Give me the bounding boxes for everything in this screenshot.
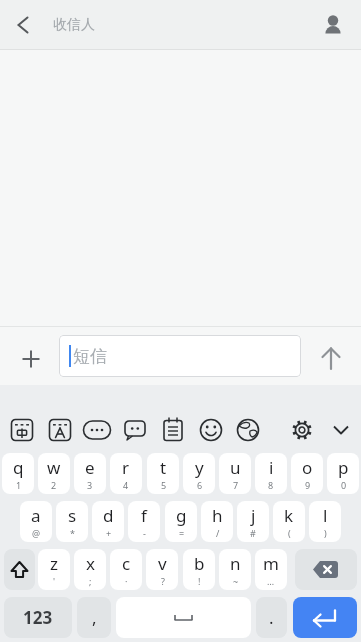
staticText: , (92, 606, 97, 629)
staticText: z (50, 552, 58, 575)
staticText: 9 (305, 479, 311, 491)
staticText: 1 (16, 479, 22, 491)
staticText: w (47, 456, 61, 479)
button[interactable]: r (110, 453, 142, 494)
staticText: = (179, 527, 185, 539)
staticText: 7 (233, 479, 239, 491)
staticText: b (194, 552, 205, 575)
button[interactable] (41, 406, 79, 454)
button[interactable] (293, 597, 357, 638)
staticText: p (338, 456, 349, 479)
button[interactable] (309, 0, 361, 50)
button[interactable] (192, 406, 230, 454)
button[interactable] (4, 549, 35, 590)
staticText: @ (32, 527, 41, 539)
button[interactable]: b (183, 549, 215, 590)
staticText: ! (198, 575, 201, 587)
staticText: 2 (51, 479, 57, 491)
button[interactable]: u (219, 453, 251, 494)
staticText: + (106, 527, 112, 539)
staticText: · (125, 575, 128, 587)
button[interactable] (229, 406, 267, 454)
button[interactable]: a (20, 501, 52, 542)
button[interactable]: l (309, 501, 341, 542)
button[interactable]: j (237, 501, 269, 542)
staticText: e (85, 456, 95, 479)
button[interactable]: m (255, 549, 287, 590)
button[interactable] (154, 406, 192, 454)
staticText: r (122, 456, 130, 479)
button[interactable]: z (38, 549, 70, 590)
staticText: s (68, 504, 77, 527)
button[interactable]: h (201, 501, 233, 542)
staticText: - (143, 527, 146, 539)
staticText: q (13, 456, 24, 479)
button[interactable]: v (146, 549, 178, 590)
staticText: . (269, 606, 274, 629)
staticText: y (195, 456, 204, 479)
button[interactable] (283, 406, 321, 454)
button[interactable] (322, 406, 360, 454)
button[interactable]: o (291, 453, 323, 494)
staticText: / (216, 527, 220, 539)
staticText: ) (324, 527, 327, 539)
staticText: ? (161, 575, 165, 587)
staticText: c (122, 552, 131, 575)
staticText: x (86, 552, 95, 575)
staticText: m (263, 552, 279, 575)
staticText: l (323, 504, 328, 527)
staticText: k (284, 504, 294, 527)
staticText: # (250, 527, 256, 539)
staticText: f (141, 504, 147, 527)
staticText: n (230, 552, 241, 575)
button[interactable] (3, 406, 41, 454)
staticText: ' (53, 575, 56, 587)
button[interactable]: 短信 (59, 335, 301, 377)
button[interactable]: i (255, 453, 287, 494)
staticText: 4 (123, 479, 129, 491)
button[interactable] (295, 549, 357, 590)
button[interactable] (301, 327, 361, 385)
staticText: a (31, 504, 41, 527)
button[interactable] (0, 327, 59, 385)
button[interactable]: f (128, 501, 160, 542)
button[interactable]: w (38, 453, 70, 494)
staticText: 短信 (73, 346, 107, 367)
button[interactable]: n (219, 549, 251, 590)
staticText: d (103, 504, 114, 527)
button[interactable]: x (74, 549, 106, 590)
staticText: ; (89, 575, 92, 587)
button[interactable]: , (77, 597, 111, 638)
staticText: 123 (23, 606, 53, 629)
staticText: v (158, 552, 167, 575)
button[interactable] (116, 597, 251, 638)
staticText: j (251, 504, 256, 527)
button[interactable] (0, 0, 46, 50)
staticText: t (160, 456, 167, 479)
staticText: 6 (197, 479, 203, 491)
button[interactable] (78, 406, 116, 454)
button[interactable]: t (147, 453, 179, 494)
button[interactable]: d (92, 501, 124, 542)
button[interactable]: g (165, 501, 197, 542)
button[interactable]: k (273, 501, 305, 542)
staticText: 5 (161, 479, 167, 491)
button[interactable]: 123 (4, 597, 72, 638)
staticText: * (70, 527, 75, 539)
staticText: ~ (233, 575, 239, 587)
button[interactable]: y (183, 453, 215, 494)
button[interactable]: p (327, 453, 359, 494)
staticText: h (212, 504, 223, 527)
staticText: … (267, 575, 275, 587)
button[interactable]: c (110, 549, 142, 590)
staticText: 收信人 (53, 16, 95, 34)
staticText: 8 (268, 479, 274, 491)
staticText: 3 (87, 479, 93, 491)
button[interactable]: q (2, 453, 34, 494)
button[interactable] (116, 406, 154, 454)
button[interactable]: e (74, 453, 106, 494)
button[interactable]: . (256, 597, 287, 638)
staticText: ( (288, 527, 291, 539)
staticText: 0 (341, 479, 347, 491)
button[interactable]: s (56, 501, 88, 542)
